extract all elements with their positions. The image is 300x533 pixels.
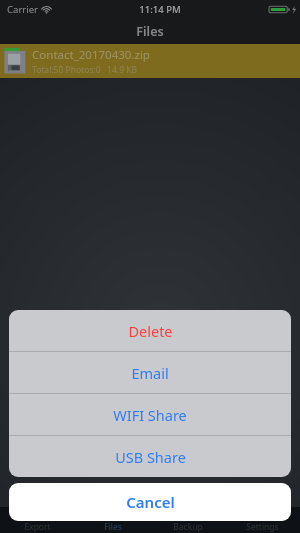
staticText: Contact_20170430.zip <box>32 47 150 63</box>
staticText: 11:14 PM <box>139 3 181 16</box>
button[interactable]: Settings <box>225 507 300 533</box>
button[interactable]: Delete <box>9 310 291 351</box>
button[interactable]: Contact_20170430.zip <box>0 44 300 78</box>
staticText: WIFI Share <box>113 405 187 425</box>
staticText: Files <box>136 23 164 40</box>
staticText: Settings <box>246 521 279 533</box>
button[interactable]: Backup <box>150 507 225 533</box>
button[interactable]: Cancel <box>9 483 291 521</box>
staticText: Email <box>131 363 169 383</box>
button[interactable]: Export <box>0 507 75 533</box>
button[interactable]: WIFI Share <box>9 394 291 435</box>
staticText: Total:50 Photos:0 14.9 KB <box>32 64 137 76</box>
other: Battery <box>269 4 295 15</box>
button[interactable]: Email <box>9 352 291 393</box>
staticText: Backup <box>173 521 203 533</box>
staticText: USB Share <box>115 447 186 467</box>
staticText: Export <box>24 521 51 533</box>
staticText: Files <box>104 521 122 533</box>
staticText: Carrier <box>7 3 38 16</box>
button[interactable]: USB Share <box>9 436 291 477</box>
staticText: Cancel <box>126 492 175 512</box>
staticText: Delete <box>128 321 173 341</box>
other: Wi-Fi <box>41 5 52 14</box>
button[interactable]: Files <box>75 507 150 533</box>
